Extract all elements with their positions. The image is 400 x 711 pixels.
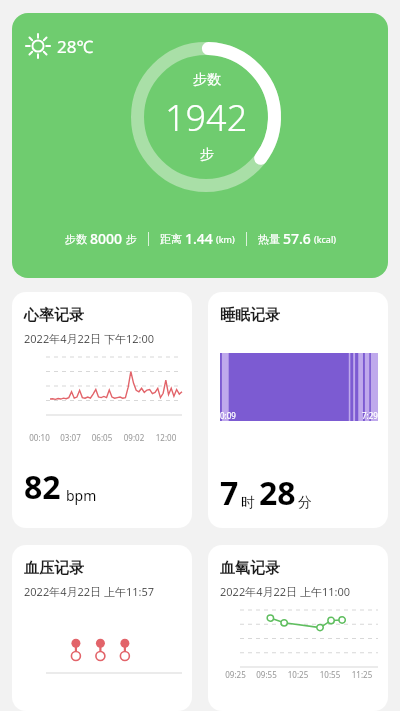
staticText: 09:02 (118, 432, 150, 443)
staticText: 03:07 (55, 432, 86, 443)
staticText: 1.44 (185, 229, 213, 248)
staticText: 2022年4月22日 上午11:00 (220, 584, 351, 599)
staticText: 分 (298, 494, 312, 512)
staticText: 28℃ (57, 35, 94, 58)
button[interactable]: Weather (12, 13, 388, 278)
staticText: 心率记录 (24, 306, 84, 325)
staticText: (km) (216, 233, 235, 245)
staticText: 2022年4月22日 下午12:00 (24, 331, 155, 346)
other: Weather (25, 33, 51, 59)
staticText: 8000 (90, 229, 123, 248)
button[interactable]: 血压记录 (12, 545, 192, 711)
staticText: 7 (220, 471, 239, 515)
staticText: bpm (66, 486, 97, 505)
staticText: 09:25 (220, 669, 251, 680)
staticText: (kcal) (314, 233, 336, 245)
staticText: 82 (24, 465, 61, 509)
staticText: 11:25 (346, 669, 378, 680)
staticText: 10:55 (314, 669, 346, 680)
staticText: 距离 (160, 232, 182, 246)
staticText: 00:10 (24, 432, 55, 443)
staticText: 血压记录 (24, 559, 84, 578)
staticText: 睡眠记录 (220, 306, 280, 325)
staticText: 步数 (65, 232, 87, 246)
staticText: 28 (259, 471, 296, 515)
staticText: 09:55 (251, 669, 282, 680)
staticText: 步数 (193, 71, 221, 89)
staticText: 热量 (258, 232, 280, 246)
staticText: 10:25 (282, 669, 314, 680)
staticText: 7:29 (362, 410, 378, 421)
staticText: 1942 (165, 93, 248, 142)
staticText: 06:05 (86, 432, 118, 443)
button[interactable]: 血氧记录 (208, 545, 388, 711)
staticText: 2022年4月22日 上午11:57 (24, 584, 155, 599)
staticText: 57.6 (283, 229, 311, 248)
staticText: 时 (241, 494, 255, 512)
staticText: 步 (200, 146, 214, 164)
staticText: 血氧记录 (220, 559, 280, 578)
button[interactable]: 睡眠记录 (208, 292, 388, 528)
staticText: 步 (126, 232, 137, 246)
staticText: 0:09 (220, 410, 236, 421)
button[interactable]: 心率记录 (12, 292, 192, 528)
staticText: 12:00 (150, 432, 182, 443)
